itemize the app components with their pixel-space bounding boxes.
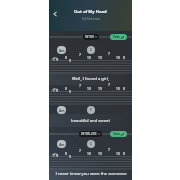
staticText: 8: [65, 151, 67, 156]
staticText: 9: [69, 58, 71, 63]
button[interactable]: C: [87, 106, 95, 114]
staticText: beautiful and sweet: [71, 118, 110, 124]
button[interactable]: INTERLUDE: [79, 131, 102, 137]
staticText: 9: [56, 57, 58, 62]
staticText: 8: [65, 86, 67, 91]
staticText: I never knew you were the someone: [55, 171, 127, 177]
staticText: Am: [59, 142, 65, 146]
staticText: C: [90, 142, 93, 146]
staticText: 9: [56, 88, 58, 93]
staticText: C: [90, 48, 93, 52]
staticText: 7: [79, 148, 81, 153]
staticText: 7: [79, 52, 81, 57]
staticText: 10: [87, 55, 91, 60]
staticText: 7: [53, 57, 55, 62]
staticText: Out of My Head: [74, 9, 107, 15]
staticText: 8: [123, 55, 125, 60]
staticText: 10: [87, 151, 91, 156]
staticText: 9: [69, 154, 71, 159]
staticText: 10: [116, 55, 120, 60]
staticText: 10: [98, 151, 102, 156]
button[interactable]: C: [87, 140, 95, 148]
staticText: Tabs: [113, 35, 120, 39]
staticText: INTERLUDE: [81, 132, 97, 136]
staticText: 10: [98, 55, 102, 60]
button[interactable]: Am: [57, 106, 66, 114]
staticText: 8: [123, 151, 125, 156]
button[interactable]: Am: [57, 140, 66, 148]
staticText: 7: [108, 82, 110, 87]
button[interactable]: C: [87, 46, 95, 54]
staticText: C: [90, 108, 93, 112]
staticText: INTRO: [85, 35, 94, 39]
staticText: 7: [53, 88, 55, 93]
staticText: 7: [108, 51, 110, 56]
staticText: 9: [56, 153, 58, 158]
button[interactable]: Am: [57, 46, 66, 54]
staticText: 10: [116, 151, 120, 156]
staticText: 10: [87, 86, 91, 91]
staticText: 7: [53, 153, 55, 158]
staticText: Ed Sheeran: [82, 16, 100, 21]
staticText: Am: [59, 48, 65, 52]
staticText: Well, I found a girl,: [72, 76, 109, 82]
staticText: 9: [69, 89, 71, 94]
staticText: 10: [116, 86, 120, 91]
button[interactable]: INTRO: [83, 34, 99, 40]
staticText: Am: [59, 108, 65, 112]
staticText: Tabs: [113, 132, 120, 136]
button[interactable]: Back: [49, 8, 60, 19]
staticText: 8: [123, 86, 125, 91]
staticText: 8: [65, 55, 67, 60]
staticText: 7: [79, 83, 81, 88]
staticText: 7: [108, 147, 110, 152]
button[interactable]: Tabs: [110, 34, 127, 40]
button[interactable]: Tabs: [110, 131, 127, 137]
staticText: 10: [98, 86, 102, 91]
